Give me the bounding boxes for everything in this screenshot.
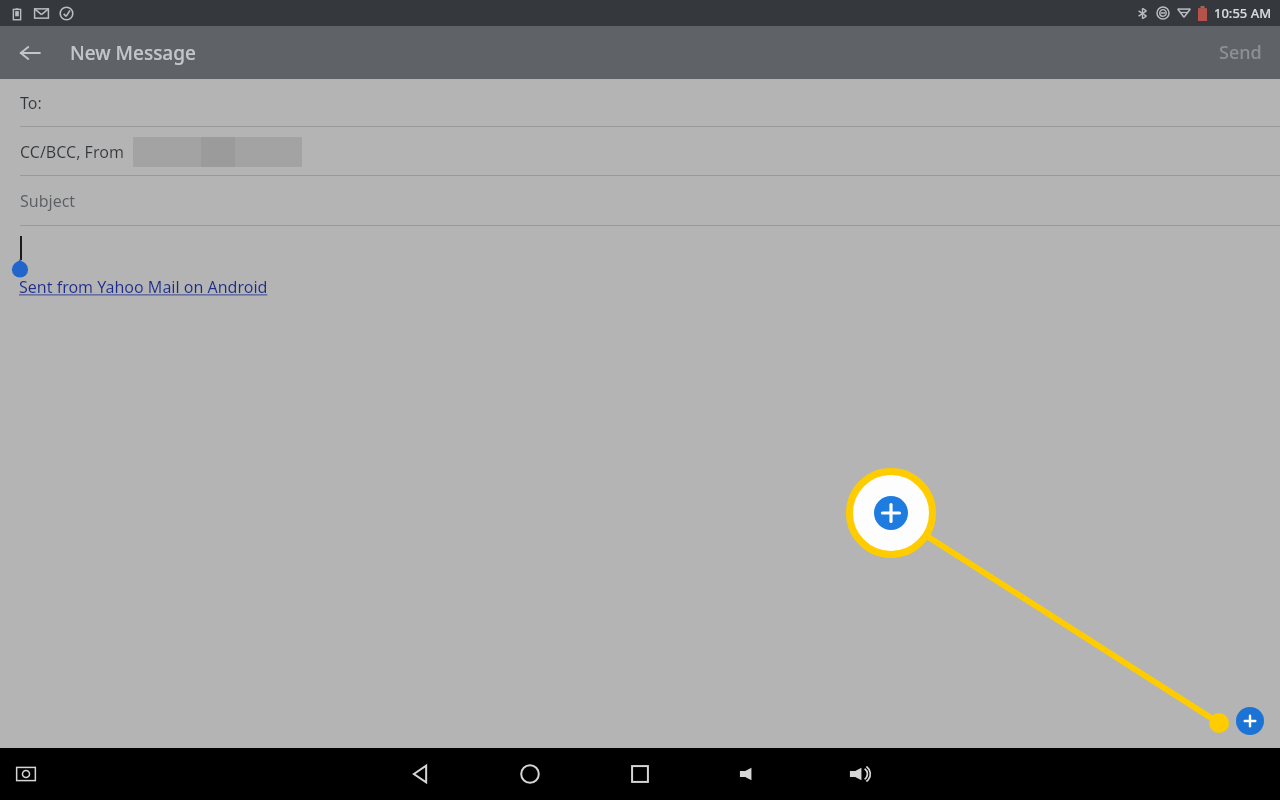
staticText: New Message [70,40,196,66]
button[interactable]: CC/BCC, From [0,127,1280,176]
button[interactable]: Add attachment [1236,707,1264,735]
staticText: Send [1219,40,1262,65]
button[interactable]: Subject [0,176,1280,225]
staticText: 10:55 AM [1214,4,1272,22]
button[interactable]: Volume up [838,752,882,796]
staticText: Subject [20,190,76,212]
button[interactable]: Sent from Yahoo Mail on Android [0,226,1280,346]
button[interactable]: Recent apps [618,752,662,796]
button[interactable]: Back [398,752,442,796]
staticText: CC/BCC, From [20,141,124,163]
button[interactable]: Send [1201,28,1280,77]
button[interactable]: Back [10,33,50,73]
staticText: To: [20,92,42,114]
button[interactable]: Add attachment highlight [843,465,939,561]
button[interactable]: To: [0,79,1280,127]
button[interactable]: Screenshot [6,754,46,794]
button[interactable]: Volume down [728,752,772,796]
button[interactable]: Home [508,752,552,796]
staticText: Sent from Yahoo Mail on Android [19,276,268,298]
